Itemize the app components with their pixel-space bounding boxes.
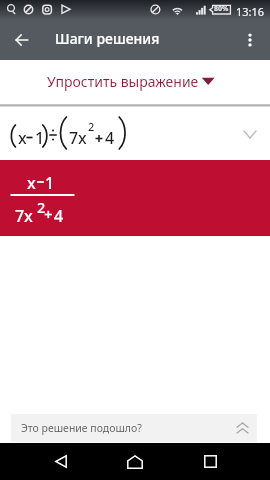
staticText: 13:16 xyxy=(236,4,265,19)
staticText: x xyxy=(78,127,87,149)
staticText: 4 xyxy=(105,127,115,149)
staticText: x xyxy=(24,205,33,227)
button[interactable]: Collapse xyxy=(230,114,270,154)
staticText: 1 xyxy=(35,127,45,149)
staticText: Шаги решения xyxy=(55,29,160,48)
staticText: 7 xyxy=(69,127,79,149)
button[interactable]: Это решение подошло? xyxy=(11,414,257,442)
staticText: 1 xyxy=(45,172,55,194)
button[interactable]: Упростить выражение xyxy=(0,60,270,104)
button[interactable]: Back xyxy=(39,443,83,480)
button[interactable]: More options xyxy=(230,20,270,60)
staticText: x xyxy=(27,172,36,194)
button[interactable]: Home xyxy=(113,443,157,480)
staticText: 4 xyxy=(54,205,64,227)
button[interactable]: Back xyxy=(2,20,42,60)
staticText: 2 xyxy=(88,119,95,134)
staticText: Это решение подошло? xyxy=(21,421,142,435)
button[interactable]: Recents xyxy=(188,443,232,480)
staticText: Упростить выражение xyxy=(47,72,199,91)
staticText: 7 xyxy=(15,205,25,227)
staticText: 2 xyxy=(37,197,46,217)
staticText: x xyxy=(18,127,27,149)
staticText: 80% xyxy=(214,4,229,14)
